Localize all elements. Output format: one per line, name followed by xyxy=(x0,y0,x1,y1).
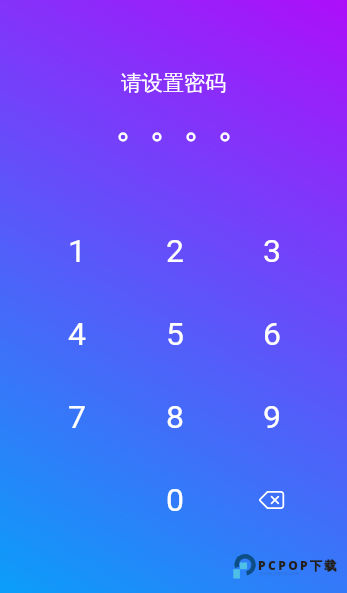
staticText: 2 xyxy=(166,232,184,270)
button[interactable]: Delete xyxy=(223,458,320,541)
staticText: www.pcpop.com xyxy=(260,570,300,577)
button[interactable]: 4 xyxy=(28,292,126,375)
button[interactable]: 6 xyxy=(223,292,320,375)
staticText: 5 xyxy=(166,315,184,353)
staticText: 3 xyxy=(263,232,281,270)
button[interactable]: 5 xyxy=(126,292,223,375)
staticText: 0 xyxy=(166,481,184,519)
staticText: 6 xyxy=(263,315,281,353)
staticText: 8 xyxy=(166,398,184,436)
staticText: 1 xyxy=(68,232,86,270)
staticText: 9 xyxy=(263,398,281,436)
button[interactable]: 8 xyxy=(126,375,223,458)
button[interactable]: 3 xyxy=(223,209,320,292)
staticText: 4 xyxy=(68,315,86,353)
button[interactable]: 2 xyxy=(126,209,223,292)
staticText: 7 xyxy=(68,398,86,436)
button[interactable]: 9 xyxy=(223,375,320,458)
button[interactable]: 0 xyxy=(126,458,223,541)
button[interactable]: 7 xyxy=(28,375,126,458)
button[interactable]: 1 xyxy=(28,209,126,292)
other: Backspace xyxy=(258,490,285,510)
staticText: 请设置密码 xyxy=(121,70,226,96)
staticText: PCPOP下载 xyxy=(258,557,339,573)
